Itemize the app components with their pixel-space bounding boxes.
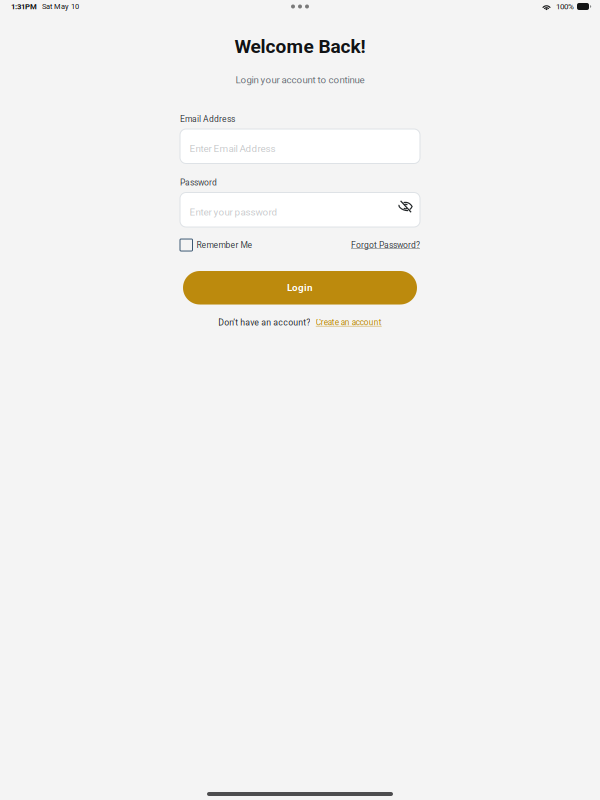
staticText: Remember Me [196, 240, 252, 250]
staticText: Password [180, 177, 217, 187]
staticText: Enter your password [189, 206, 277, 218]
staticText: Forgot Password? [351, 240, 420, 250]
staticText: Enter Email Address [189, 143, 275, 155]
staticText: Welcome Back! [234, 35, 365, 58]
staticText: Sat May 10 [42, 2, 79, 11]
staticText: Create an account [316, 318, 382, 327]
button[interactable]: Forgot Password? [351, 240, 420, 250]
staticText: 1:31PM [11, 2, 37, 11]
staticText: Don’t have an account? [218, 317, 310, 328]
staticText: Login your account to continue [235, 74, 364, 86]
staticText: Login [287, 282, 313, 294]
button[interactable]: Remember Me [180, 239, 252, 251]
staticText: Email Address [180, 114, 235, 124]
button[interactable]: Show password [390, 194, 414, 225]
staticText: 100% [556, 2, 574, 11]
button[interactable]: Create an account [310, 318, 382, 327]
button[interactable]: Login [183, 271, 417, 304]
